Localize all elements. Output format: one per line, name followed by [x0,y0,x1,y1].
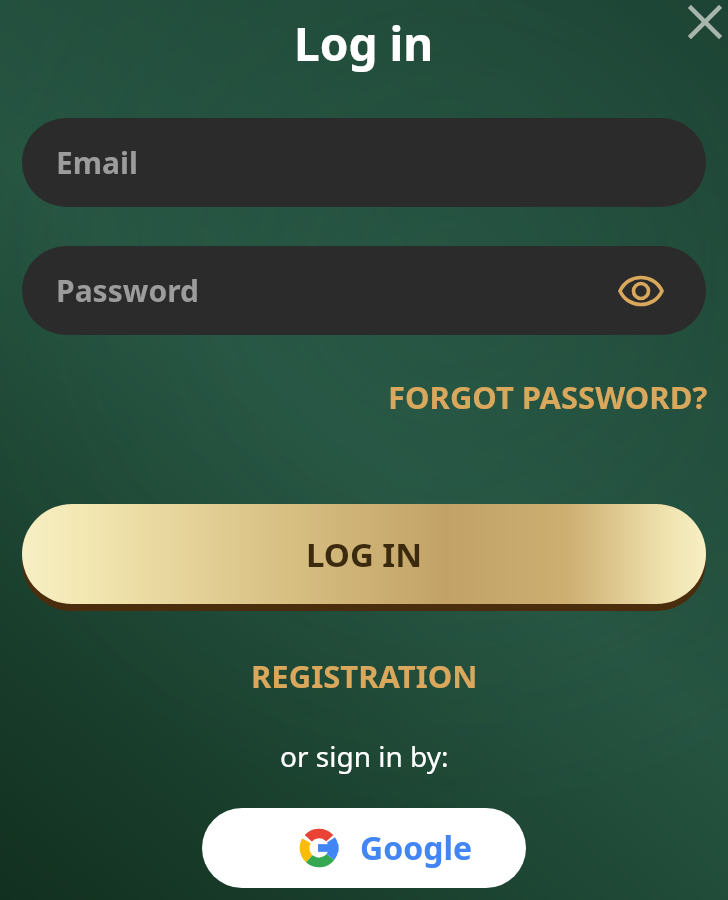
staticText: or sign in by: [280,737,449,775]
staticText: Log in [294,12,434,74]
button[interactable]: FORGOT PASSWORD? [354,366,708,428]
staticText: Google [360,826,473,870]
button[interactable]: Password [22,246,706,335]
staticText: REGISTRATION [251,655,478,697]
button[interactable]: Show password [612,262,670,320]
button[interactable]: LOG IN [22,504,706,612]
staticText: Email [56,142,138,183]
button[interactable]: Google [202,808,526,888]
staticText: FORGOT PASSWORD? [388,376,708,418]
button[interactable]: Close [683,0,727,44]
staticText: Password [56,270,199,311]
button[interactable]: Email [22,118,706,207]
staticText: LOG IN [306,532,423,577]
button[interactable]: REGISTRATION [194,646,534,706]
